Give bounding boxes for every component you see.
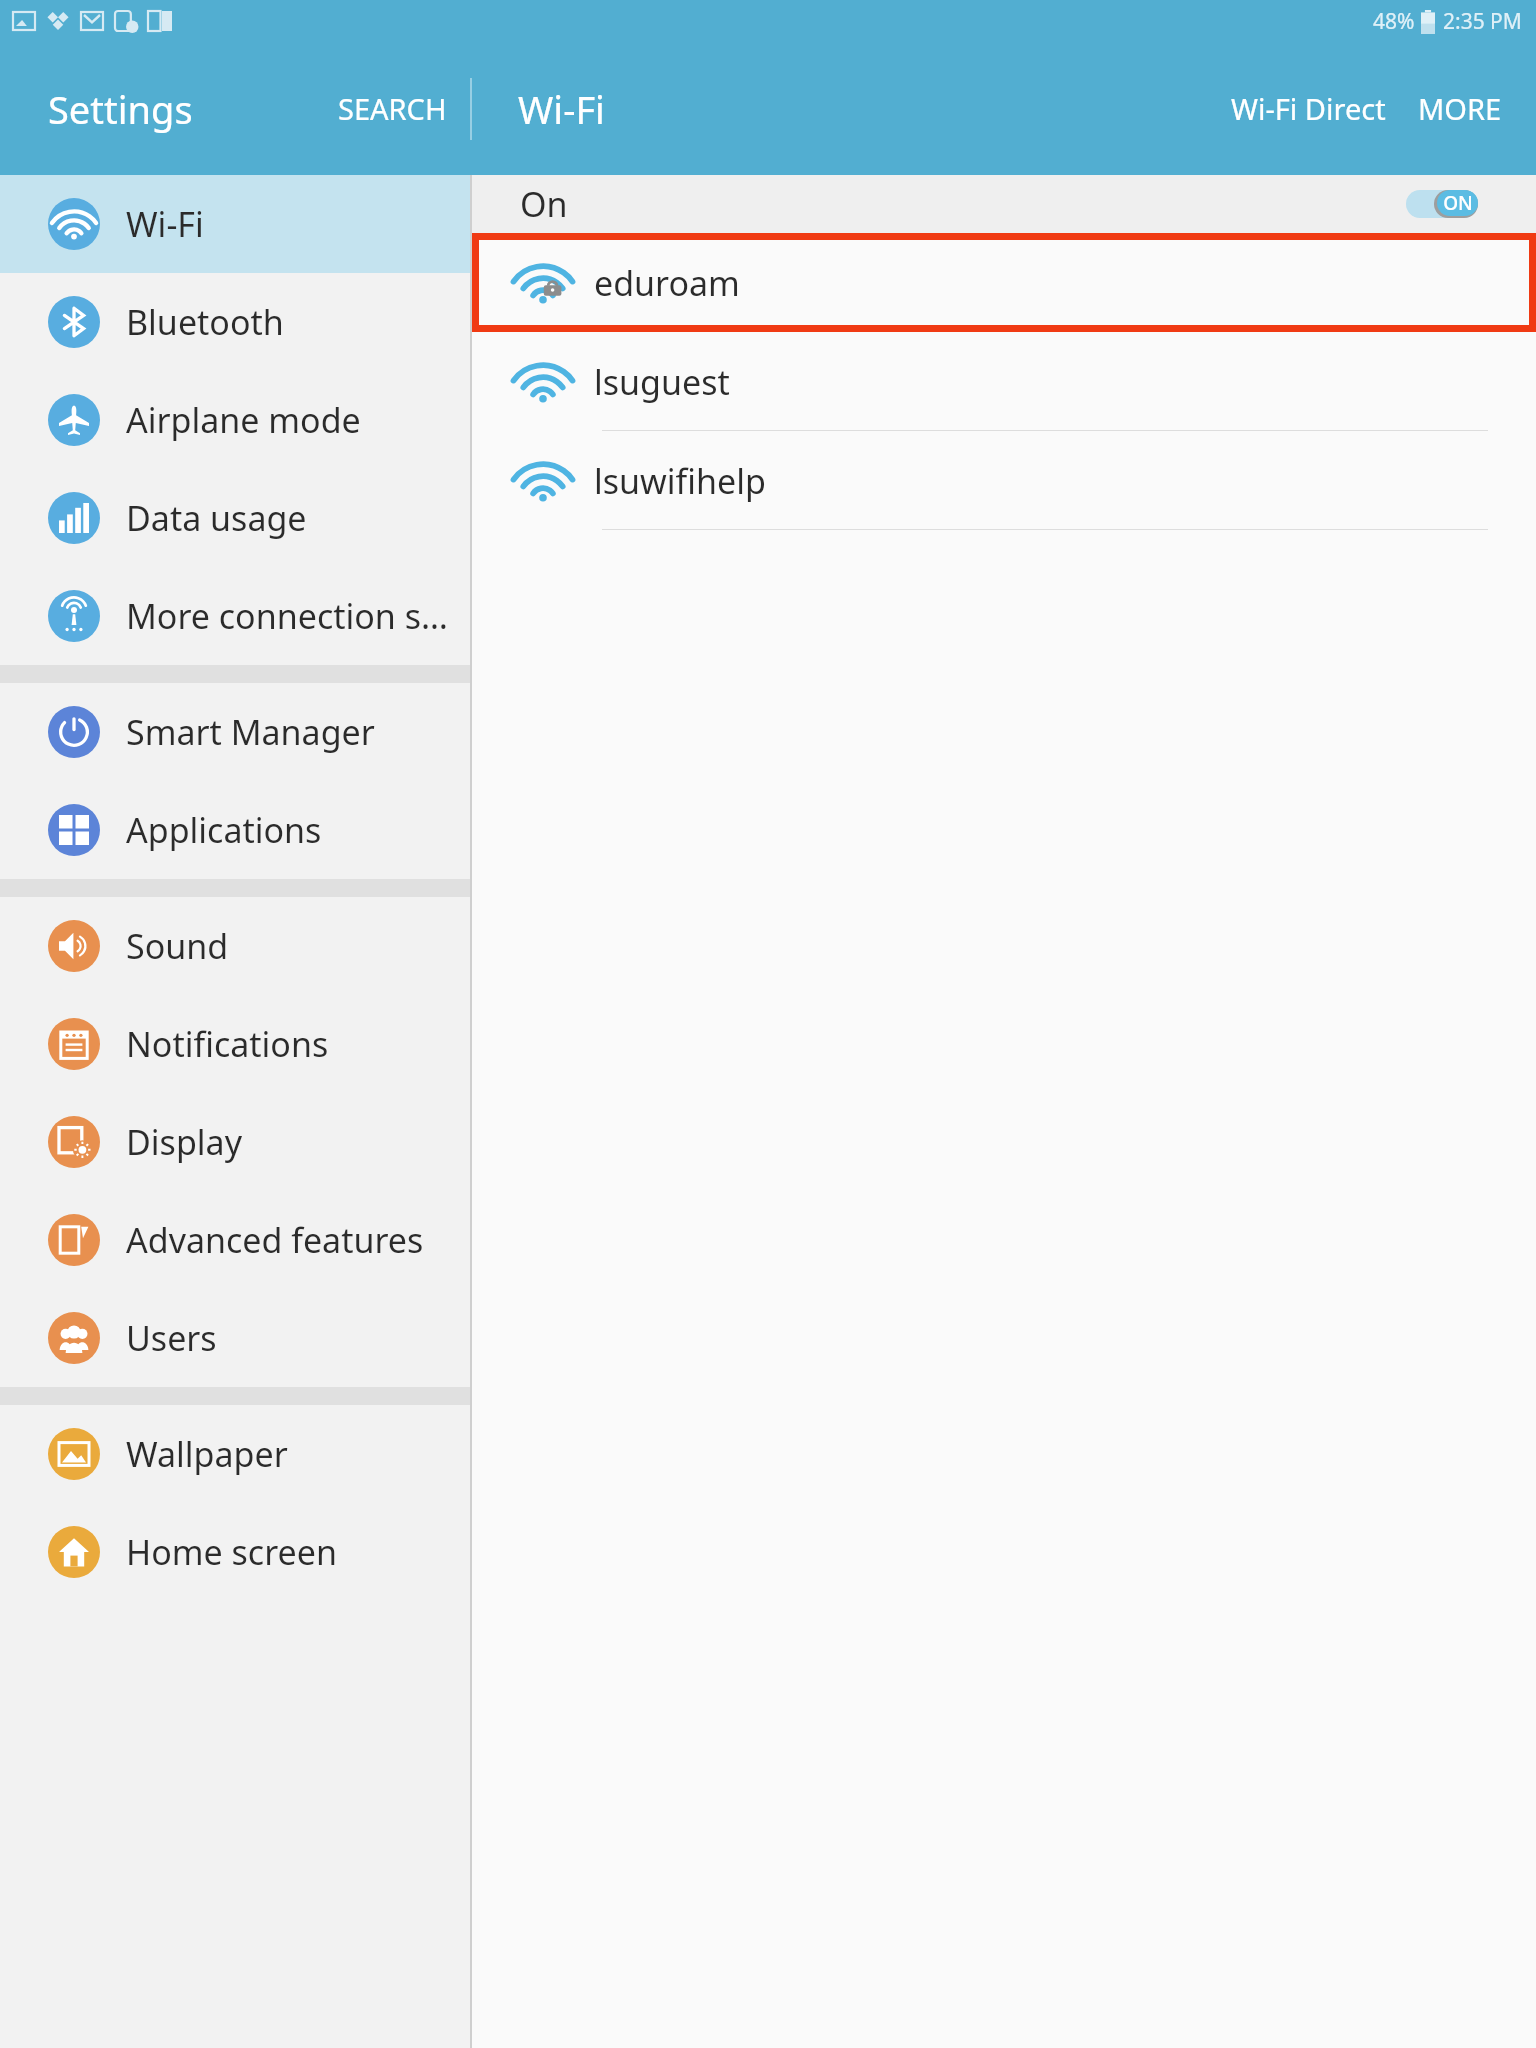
- button[interactable]: Wi-Fi on: [1406, 190, 1478, 218]
- staticText: Advanced features: [126, 1217, 424, 1263]
- staticText: SEARCH: [338, 89, 447, 128]
- button[interactable]: lsuguest: [472, 332, 1536, 431]
- button[interactable]: Data usage: [0, 469, 470, 567]
- staticText: lsuwifihelp: [594, 458, 766, 504]
- staticText: ON: [1443, 190, 1473, 216]
- staticText: Sound: [126, 923, 229, 969]
- staticText: Bluetooth: [126, 299, 284, 345]
- button[interactable]: Users: [0, 1289, 470, 1387]
- button[interactable]: Airplane mode: [0, 371, 470, 469]
- staticText: Settings: [48, 83, 193, 135]
- staticText: 2:35 PM: [1443, 7, 1522, 36]
- staticText: Users: [126, 1315, 217, 1361]
- button[interactable]: Smart Manager: [0, 683, 470, 781]
- staticText: Airplane mode: [126, 397, 361, 443]
- staticText: Smart Manager: [126, 709, 375, 755]
- button[interactable]: Wi-Fi Direct: [1221, 71, 1396, 146]
- button[interactable]: eduroam: [472, 233, 1536, 332]
- button[interactable]: Sound: [0, 897, 470, 995]
- staticText: 48%: [1373, 7, 1415, 36]
- button[interactable]: Applications: [0, 781, 470, 879]
- staticText: Data usage: [126, 495, 307, 541]
- staticText: Applications: [126, 807, 322, 853]
- staticText: MORE: [1418, 89, 1502, 128]
- staticText: Wi-Fi: [126, 201, 204, 247]
- staticText: Wallpaper: [126, 1431, 288, 1477]
- button[interactable]: lsuwifihelp: [472, 431, 1536, 530]
- button[interactable]: Display: [0, 1093, 470, 1191]
- button[interactable]: Wi-Fi: [0, 175, 470, 273]
- staticText: Home screen: [126, 1529, 337, 1575]
- button[interactable]: More connection settin…: [0, 567, 470, 665]
- button[interactable]: Wallpaper: [0, 1405, 470, 1503]
- staticText: Wi-Fi: [518, 83, 605, 135]
- button[interactable]: MORE: [1412, 71, 1508, 146]
- staticText: eduroam: [594, 260, 740, 306]
- staticText: Wi-Fi Direct: [1231, 89, 1386, 128]
- staticText: lsuguest: [594, 359, 730, 405]
- staticText: More connection settin…: [126, 593, 458, 639]
- button[interactable]: Advanced features: [0, 1191, 470, 1289]
- button[interactable]: SEARCH: [330, 71, 455, 146]
- staticText: On: [520, 181, 568, 227]
- button[interactable]: Bluetooth: [0, 273, 470, 371]
- button[interactable]: Home screen: [0, 1503, 470, 1601]
- button[interactable]: Notifications: [0, 995, 470, 1093]
- staticText: Display: [126, 1119, 242, 1165]
- staticText: Notifications: [126, 1021, 329, 1067]
